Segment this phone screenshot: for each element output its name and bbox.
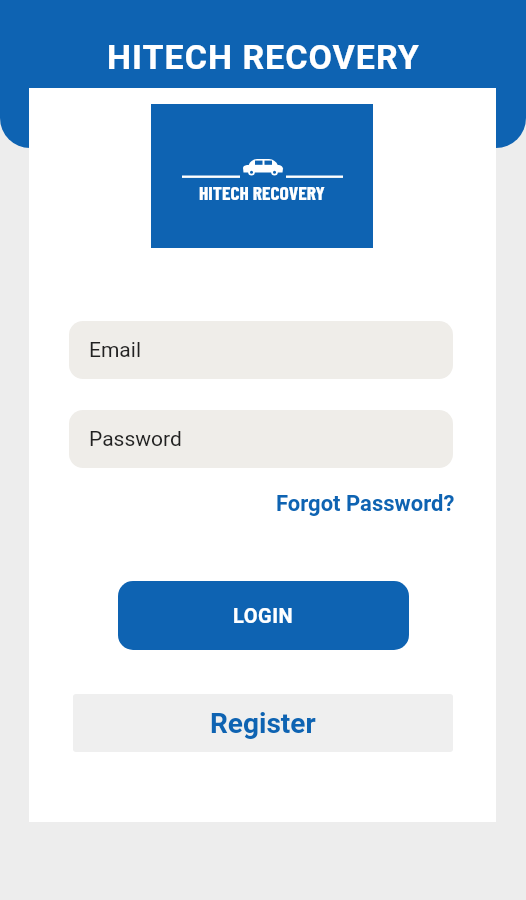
button[interactable]: Register <box>73 694 453 752</box>
staticText: HITECH RECOVERY <box>199 180 325 203</box>
button[interactable]: Password <box>69 410 453 468</box>
button[interactable]: Email <box>69 321 453 379</box>
staticText: LOGIN <box>233 604 294 627</box>
button[interactable]: LOGIN <box>118 581 409 650</box>
button[interactable]: Forgot Password? <box>276 491 455 517</box>
staticText: Email <box>89 338 141 363</box>
staticText: Password <box>89 427 182 452</box>
staticText: HITECH RECOVERY <box>107 37 420 77</box>
staticText: Register <box>210 707 316 740</box>
